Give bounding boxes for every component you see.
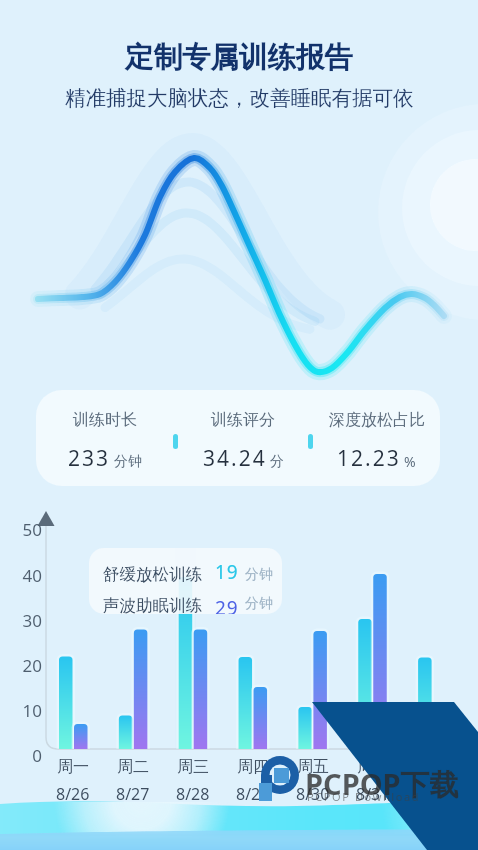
staticText: 50 [8,518,42,540]
staticText: 舒缓放松训练 [103,564,202,585]
staticText: PCPOP Download [307,789,421,804]
staticText: 周六 [357,757,389,777]
staticText: 周一 [57,757,89,777]
staticText: 40 [8,564,42,586]
staticText: 9/1 [420,783,445,805]
staticText: 8/31 [356,783,390,805]
staticText: 分钟 [114,453,142,471]
staticText: 深度放松占比 [329,410,425,430]
staticText: 周四 [237,757,269,777]
staticText: 19 [215,559,239,585]
staticText: 分钟 [245,595,273,613]
staticText: 周二 [117,757,149,777]
staticText: 29 [215,595,239,614]
staticText: 20 [8,654,42,676]
button[interactable]: 舒缓放松训练 [89,548,282,614]
staticText: 8/29 [236,783,270,805]
staticText: 30 [8,609,42,631]
staticText: 8/28 [176,783,210,805]
staticText: 周五 [297,757,329,777]
staticText: 12.23 [337,444,401,473]
staticText: 34.24 [203,444,267,473]
staticText: 声波助眠训练 [103,595,202,614]
staticText: 周日 [416,757,448,777]
button[interactable]: 训练时长 [36,390,440,486]
staticText: 定制专属训练报告 [125,40,353,76]
staticText: 分 [270,453,284,471]
staticText: 训练评分 [211,410,275,430]
staticText: 10 [8,699,42,721]
staticText: 8/30 [296,783,330,805]
staticText: 233 [68,444,111,473]
staticText: 8/26 [56,783,90,805]
staticText: 0 [8,744,42,766]
staticText: 精准捕捉大脑状态，改善睡眠有据可依 [65,85,414,111]
staticText: PCPOP下载 [305,764,459,804]
staticText: 分钟 [245,566,273,584]
staticText: % [404,452,416,471]
staticText: 训练时长 [73,410,137,430]
staticText: 周三 [177,757,209,777]
staticText: 8/27 [116,783,150,805]
